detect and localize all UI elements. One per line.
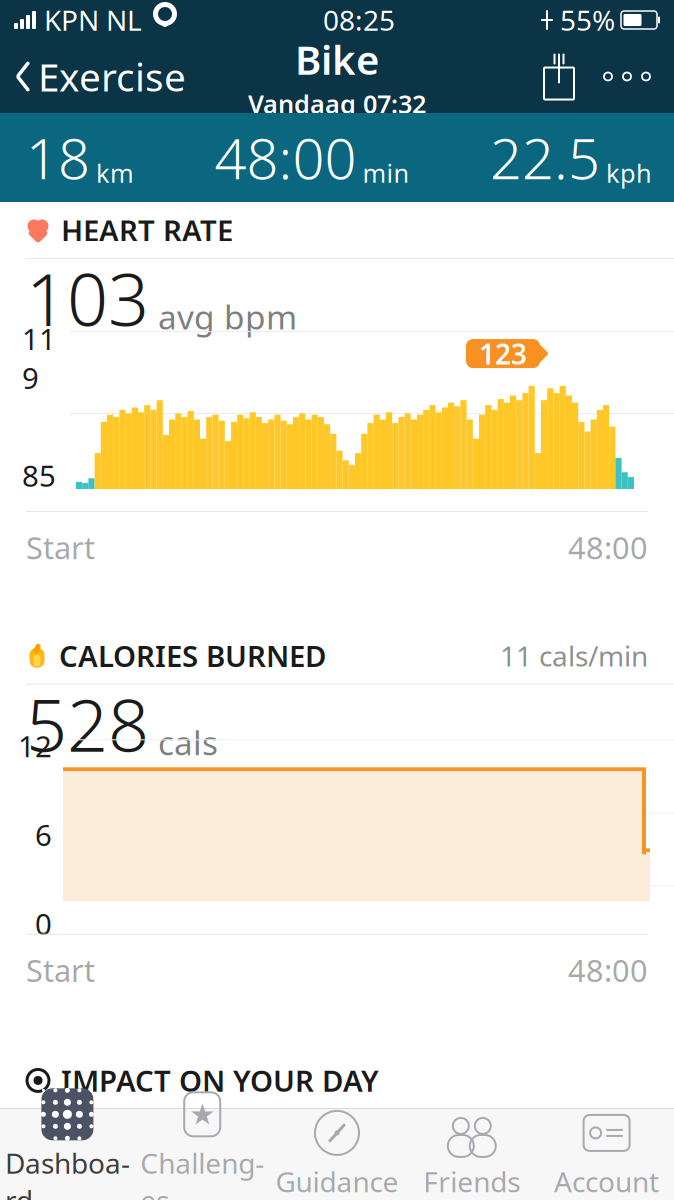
- staticText: 528: [26, 676, 149, 771]
- staticText: 6: [35, 815, 52, 854]
- staticText: ★: [189, 1098, 215, 1131]
- staticText: cals: [158, 720, 218, 765]
- staticText: avg bpm: [158, 294, 297, 339]
- button[interactable]: Exercise: [0, 43, 186, 110]
- staticText: HEART RATE: [61, 210, 233, 249]
- staticText: 103: [26, 250, 149, 346]
- staticText: IMPACT ON YOUR DAY: [61, 1061, 379, 1100]
- staticText: 11 cals/min: [500, 637, 648, 674]
- staticText: km: [96, 156, 134, 190]
- button[interactable]: Dashboard: [0, 1080, 135, 1200]
- staticText: 85: [22, 456, 56, 495]
- staticText: 18: [26, 120, 90, 195]
- staticText: 48:00: [568, 527, 648, 568]
- button[interactable]: More options: [588, 54, 666, 98]
- staticText: Vandaag 07:32: [248, 87, 426, 120]
- staticText: min: [362, 156, 409, 190]
- staticText: 55%: [560, 1, 615, 39]
- staticText: 08:25: [323, 1, 395, 39]
- staticText: Dashboard: [5, 1144, 130, 1200]
- staticText: KPN NL: [44, 1, 142, 39]
- button[interactable]: Guidance: [270, 1099, 404, 1200]
- button[interactable]: ★: [135, 1080, 270, 1200]
- staticText: Guidance: [275, 1163, 398, 1200]
- staticText: Challenges: [140, 1144, 264, 1200]
- staticText: Start: [26, 527, 95, 568]
- staticText: 22.5: [490, 120, 600, 195]
- staticText: Account: [554, 1163, 659, 1200]
- button[interactable]: Account: [539, 1099, 674, 1200]
- staticText: 119: [22, 319, 56, 397]
- staticText: 0: [35, 904, 52, 943]
- staticText: 123: [479, 335, 527, 372]
- staticText: 48:00: [568, 950, 648, 990]
- button[interactable]: Friends: [404, 1099, 539, 1200]
- button[interactable]: Share: [530, 48, 588, 104]
- staticText: kph: [606, 156, 652, 190]
- staticText: Start: [26, 950, 95, 990]
- staticText: Exercise: [38, 51, 186, 102]
- staticText: 12: [18, 726, 52, 765]
- staticText: 48:00: [214, 120, 356, 195]
- staticText: Bike: [295, 33, 379, 86]
- staticText: CALORIES BURNED: [59, 636, 326, 675]
- staticText: Friends: [423, 1163, 520, 1200]
